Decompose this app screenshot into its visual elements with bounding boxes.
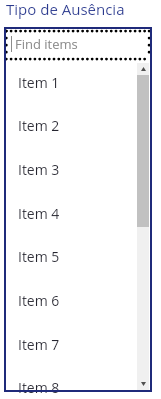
staticText: Item 8 [18, 378, 60, 397]
button[interactable]: Item 8 [6, 365, 154, 399]
staticText: Item 3 [18, 160, 60, 179]
staticText: Find items [15, 35, 78, 53]
staticText: Item 6 [18, 291, 60, 310]
button[interactable]: Item 3 [6, 147, 154, 191]
button[interactable]: Item 7 [6, 322, 154, 366]
staticText: Item 4 [18, 204, 60, 223]
button[interactable]: Item 5 [6, 234, 154, 278]
button[interactable]: Find items [6, 29, 150, 60]
staticText: Item 2 [18, 116, 60, 135]
staticText: Item 1 [18, 73, 60, 92]
button[interactable]: Item 4 [6, 191, 154, 235]
button[interactable]: Item 2 [6, 103, 154, 147]
button[interactable]: Item 6 [6, 278, 154, 322]
staticText: Item 5 [18, 247, 60, 266]
button[interactable]: Item 1 [6, 60, 154, 104]
staticText: Item 7 [18, 335, 60, 354]
button[interactable]: Scroll up [137, 63, 149, 75]
staticText: Tipo de Ausência [6, 0, 125, 19]
button[interactable]: Scroll down [137, 378, 149, 390]
